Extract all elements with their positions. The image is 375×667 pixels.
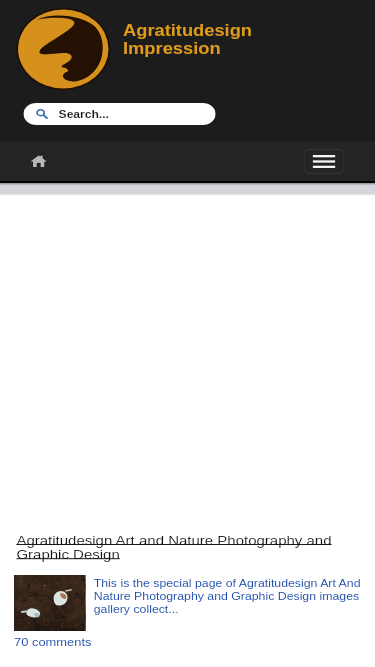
button[interactable]: Menu [303,149,344,174]
staticText: This is the special page of Agratitudesi… [94,577,363,615]
staticText: Impression [123,40,221,57]
staticText: Search... [59,109,109,121]
button[interactable]: Home [21,146,56,176]
button[interactable]: Agratitudesign Art and Nature Photograph… [16,533,350,561]
button[interactable]: 70 comments [14,636,93,648]
staticText: Agratitudesign [123,22,253,39]
button[interactable]: Search... [23,103,216,125]
